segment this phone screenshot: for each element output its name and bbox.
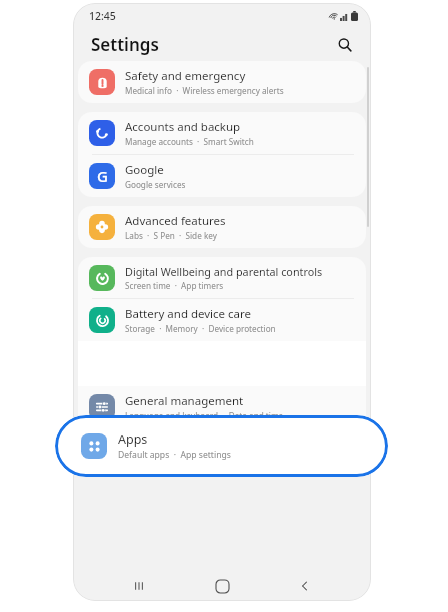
button[interactable]: Accessibility: [78, 429, 366, 471]
staticText: G: [97, 166, 108, 186]
staticText: Screen time · App timers: [125, 280, 224, 291]
button[interactable]: General management: [78, 386, 366, 428]
button[interactable]: Digital Wellbeing and parental controls: [78, 257, 366, 298]
button[interactable]: Apps: [55, 415, 388, 477]
button[interactable]: Battery and device care: [78, 299, 366, 341]
staticText: Default apps · App settings: [118, 449, 231, 461]
button[interactable]: Back: [288, 571, 322, 601]
button[interactable]: Safety and emergency: [78, 61, 366, 103]
staticText: General management: [125, 393, 244, 409]
staticText: Apps: [118, 431, 148, 448]
staticText: Storage · Memory · Device protection: [125, 323, 276, 334]
staticText: Battery and device care: [125, 306, 252, 322]
staticText: Language and keyboard · Date and time: [125, 410, 284, 421]
button[interactable]: Recents: [122, 571, 156, 601]
button[interactable]: Home: [205, 571, 239, 601]
staticText: Accounts and backup: [125, 119, 241, 135]
staticText: Manage accounts · Smart Switch: [125, 136, 254, 147]
staticText: Google: [125, 162, 164, 178]
staticText: Labs · S Pen · Side key: [125, 230, 217, 241]
staticText: Medical info · Wireless emergency alerts: [125, 85, 284, 96]
staticText: Google services: [125, 179, 186, 190]
staticText: Safety and emergency: [125, 68, 246, 84]
staticText: Accessibility: [125, 436, 190, 452]
button[interactable]: G: [78, 155, 366, 197]
staticText: Advanced features: [125, 213, 226, 229]
staticText: 12:45: [89, 9, 116, 23]
button[interactable]: Search: [333, 33, 357, 57]
button[interactable]: Advanced features: [78, 206, 366, 248]
staticText: Settings: [91, 33, 159, 56]
staticText: TalkBack · Mono audio · Assistant menu: [125, 453, 286, 464]
staticText: Digital Wellbeing and parental controls: [125, 264, 323, 279]
button[interactable]: Accounts and backup: [78, 112, 366, 154]
